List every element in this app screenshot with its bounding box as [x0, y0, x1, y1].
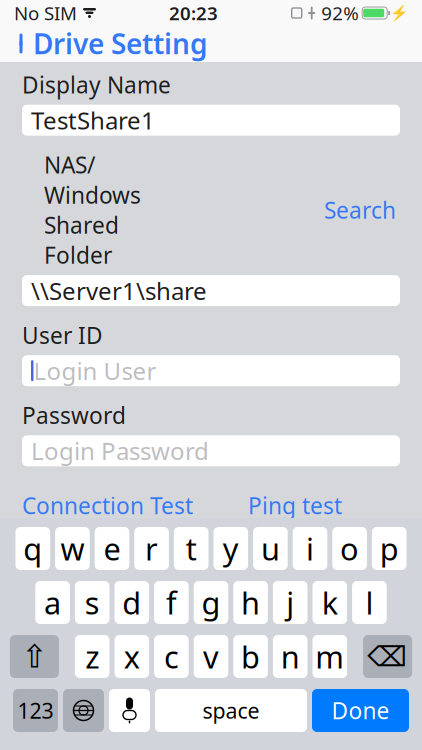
staticText: d [122, 582, 141, 623]
button[interactable]: y [213, 527, 248, 570]
button[interactable]: Done [312, 689, 409, 732]
staticText: 123 [17, 696, 53, 725]
staticText: space [202, 696, 259, 725]
button[interactable]: h [233, 581, 268, 624]
staticText: m [315, 636, 344, 677]
staticText: x [124, 636, 140, 677]
staticText: No SIM [14, 1, 77, 25]
staticText: c [164, 636, 179, 677]
staticText: u [261, 528, 280, 569]
button[interactable]: g [194, 581, 228, 624]
button[interactable]: a [35, 581, 70, 624]
button[interactable]: Delete [363, 635, 412, 678]
staticText: 20:23 [169, 1, 218, 25]
button[interactable]: e [95, 527, 129, 570]
staticText: t [186, 528, 197, 569]
staticText: b [241, 636, 260, 677]
staticText: g [201, 582, 220, 623]
staticText: k [322, 582, 338, 623]
staticText: ⇧ [21, 638, 48, 675]
button[interactable]: f [154, 581, 189, 624]
staticText: Ping test [248, 490, 342, 520]
staticText: e [103, 528, 120, 569]
button[interactable]: z [75, 635, 109, 678]
button[interactable]: v [194, 635, 228, 678]
staticText: Drive Setting [33, 25, 208, 62]
staticText: Login User [33, 355, 156, 387]
staticText [359, 4, 362, 22]
button[interactable]: u [253, 527, 288, 570]
button[interactable]: w [55, 527, 90, 570]
staticText: p [380, 528, 399, 569]
button[interactable]: r [134, 527, 169, 570]
button[interactable]: d [114, 581, 149, 624]
staticText: f [166, 582, 177, 623]
button[interactable]: Shift [10, 635, 59, 678]
button[interactable]: i [293, 527, 327, 570]
button[interactable]: Search [320, 193, 400, 227]
staticText: ⚡ [390, 5, 408, 21]
staticText: s [85, 582, 100, 623]
button[interactable]: 123 [13, 689, 58, 732]
button[interactable]: Drive Setting [0, 19, 208, 68]
staticText: Login Password [31, 435, 209, 467]
staticText: TestShare1 [31, 104, 155, 136]
staticText: Display Name [22, 70, 171, 100]
button[interactable]: j [273, 581, 307, 624]
staticText: Done [331, 695, 389, 725]
button[interactable]: b [233, 635, 268, 678]
button[interactable]: q [15, 527, 50, 570]
button[interactable]: m [312, 635, 347, 678]
staticText: y [223, 528, 239, 569]
button[interactable]: s [75, 581, 109, 624]
button[interactable]: Dictation [109, 689, 150, 732]
staticText: n [281, 636, 300, 677]
staticText: 92% [316, 1, 359, 25]
button[interactable]: t [174, 527, 208, 570]
staticText: a [44, 582, 61, 623]
staticText: Search [324, 195, 396, 225]
button[interactable]: c [154, 635, 189, 678]
staticText: o [340, 528, 359, 569]
button[interactable]: n [273, 635, 307, 678]
button[interactable]: o [332, 527, 367, 570]
button[interactable]: Connection Test [22, 486, 193, 524]
staticText: w [60, 528, 84, 569]
button[interactable]: Next keyboard [63, 689, 104, 732]
staticText: h [241, 582, 260, 623]
button[interactable]: p [372, 527, 406, 570]
button[interactable]: l [352, 581, 387, 624]
staticText: l [365, 582, 373, 623]
staticText: NAS/Windows Shared Folder [44, 150, 141, 270]
staticText: j [286, 582, 294, 623]
staticText: User ID [22, 320, 103, 350]
staticText: \\Server1\share [31, 275, 207, 307]
button[interactable]: space [155, 689, 307, 732]
button[interactable]: Ping test [248, 486, 342, 524]
staticText: q [23, 528, 42, 569]
button[interactable]: k [312, 581, 347, 624]
staticText: i [306, 528, 314, 569]
staticText: v [203, 636, 219, 677]
staticText: z [85, 636, 99, 677]
staticText: Password [22, 400, 126, 430]
button[interactable]: x [114, 635, 149, 678]
staticText: Connection Test [22, 490, 193, 520]
staticText: r [145, 528, 158, 569]
staticText: ⌫ [368, 641, 408, 672]
